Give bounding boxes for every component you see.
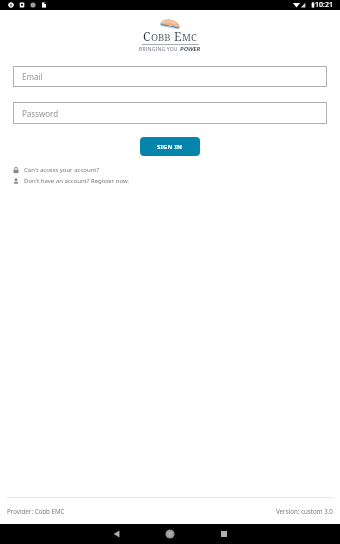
staticText: Don't have an account? Register now. xyxy=(24,177,130,185)
button[interactable]: Recent apps xyxy=(206,524,242,544)
button[interactable]: SIGN IN xyxy=(140,137,200,156)
button[interactable]: Password xyxy=(13,102,327,124)
staticText: Provider: Cobb EMC xyxy=(7,507,65,515)
button[interactable]: Email xyxy=(13,66,327,87)
staticText: BRINGING YOU xyxy=(139,46,180,53)
staticText: POWER xyxy=(180,45,201,53)
staticText: Email xyxy=(22,71,43,82)
staticText: E xyxy=(174,28,182,44)
button[interactable]: Can't access your account? xyxy=(13,166,327,174)
button[interactable]: Back xyxy=(98,524,134,544)
staticText: MC xyxy=(182,31,197,44)
staticText: SIGN IN xyxy=(157,143,183,151)
staticText: OBB xyxy=(151,31,171,44)
staticText: 10:21 xyxy=(315,0,333,10)
staticText: Password xyxy=(22,108,59,119)
staticText: Can't access your account? xyxy=(24,166,100,174)
staticText: Version: custom 3.0 xyxy=(276,507,333,515)
button[interactable]: Home xyxy=(152,524,188,544)
button[interactable]: Don't have an account? Register now. xyxy=(13,177,327,185)
staticText: C xyxy=(143,28,151,44)
